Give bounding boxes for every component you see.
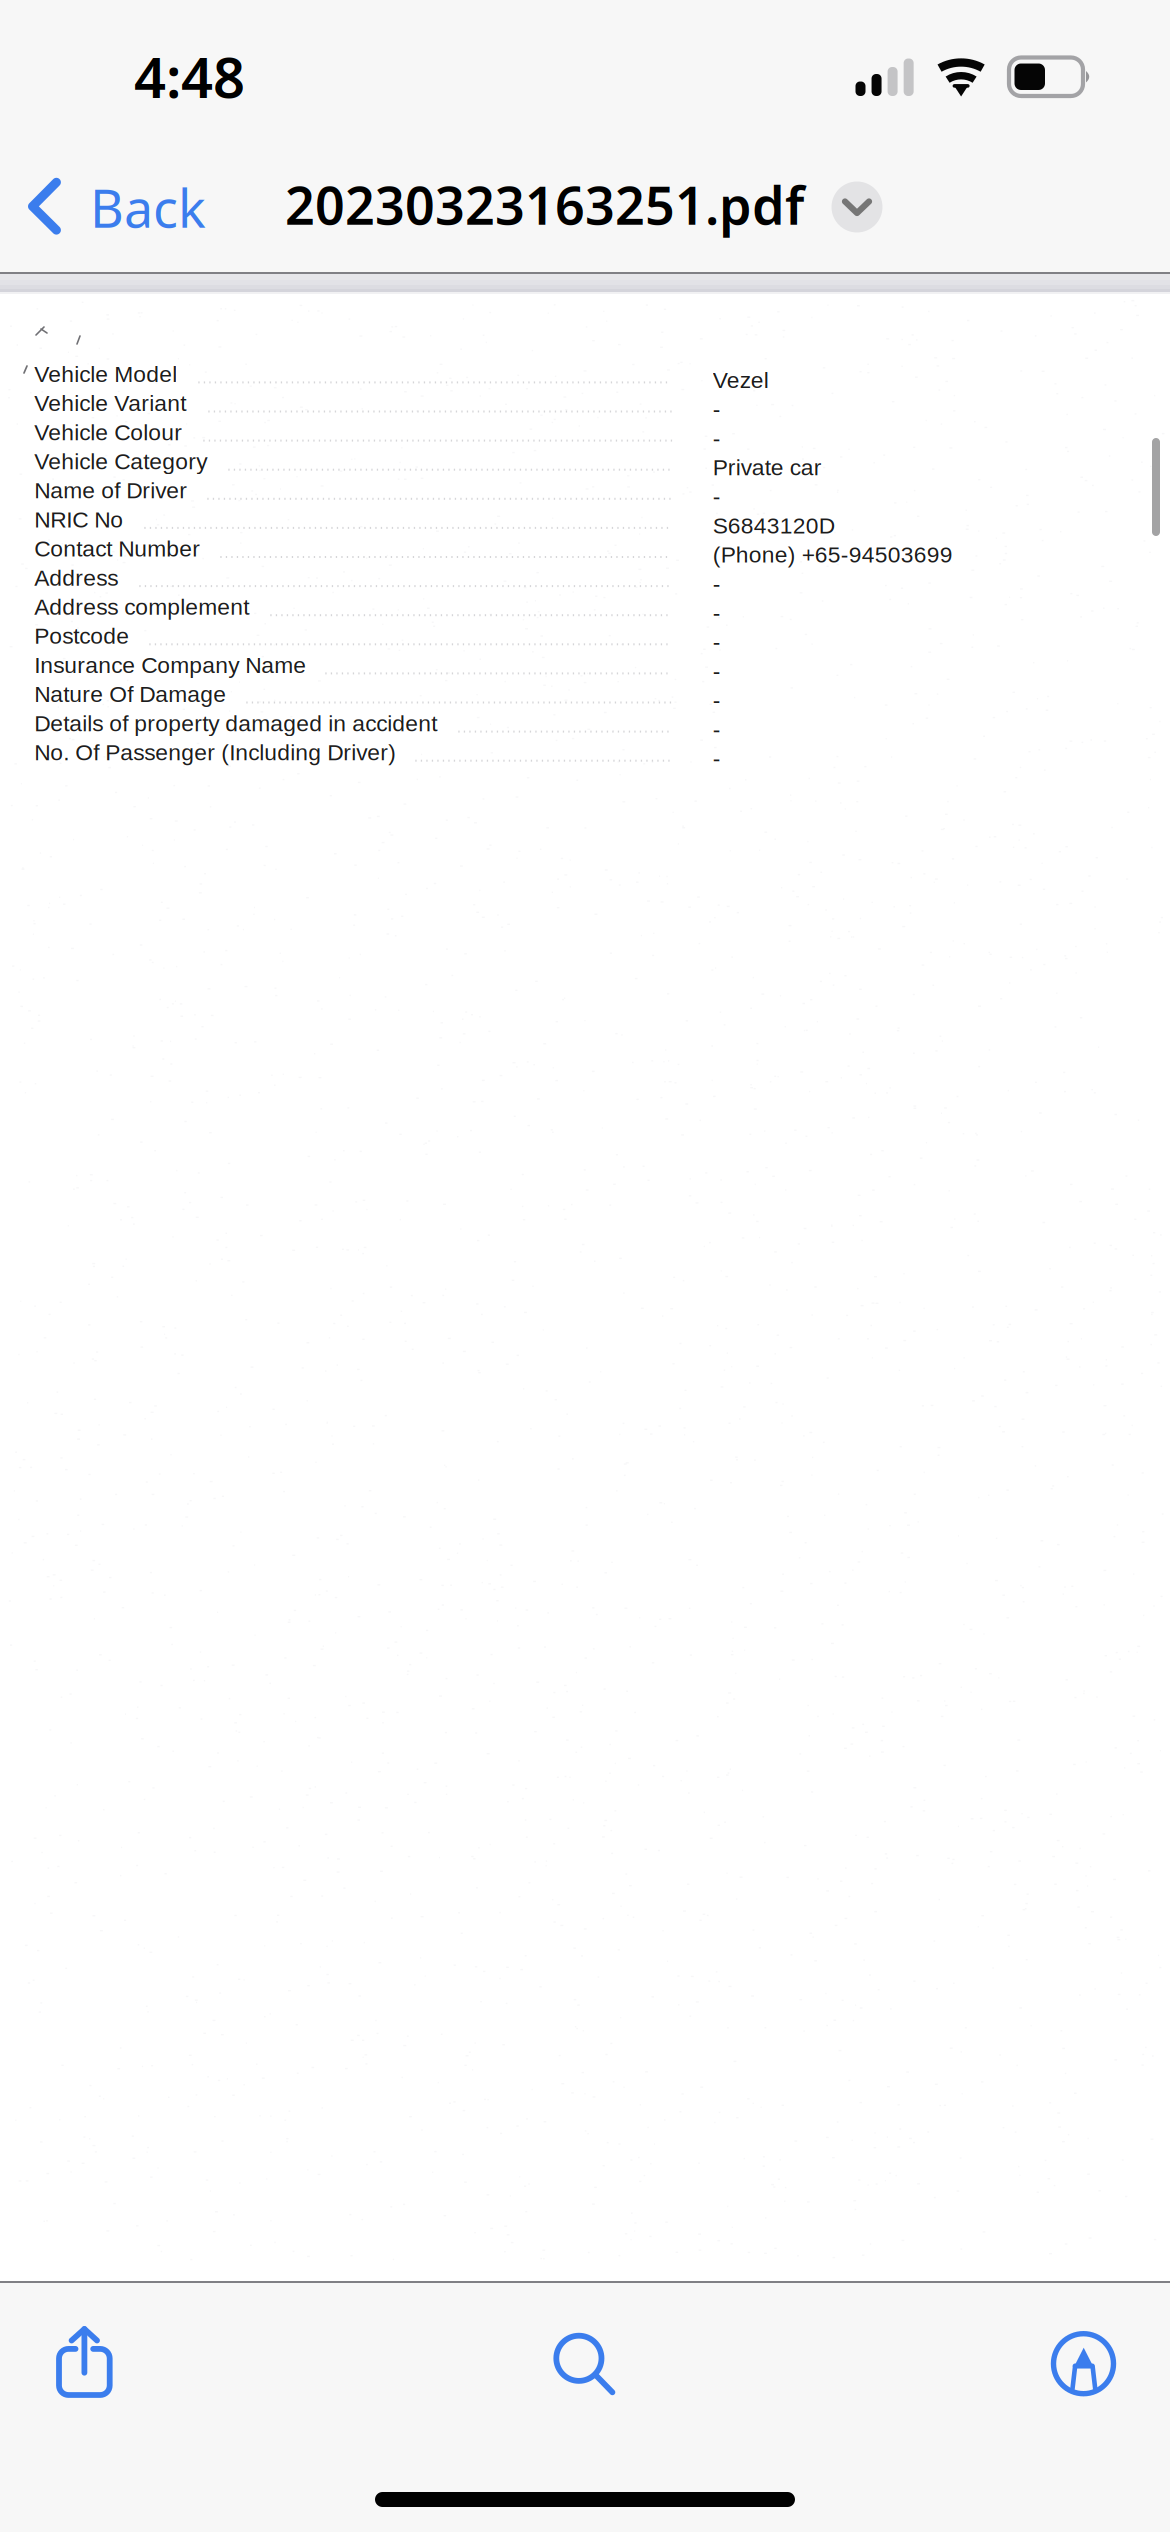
staticText: -: [713, 687, 721, 713]
staticText: Vehicle Variant: [34, 390, 186, 416]
staticText: Back: [90, 173, 206, 242]
staticText: (Phone) +65-94503699: [713, 542, 953, 567]
staticText: Postcode: [34, 623, 129, 649]
staticText: S6843120D: [713, 513, 835, 538]
button[interactable]: Back: [20, 152, 240, 256]
staticText: -: [713, 571, 721, 596]
staticText: Contact Number: [34, 536, 200, 561]
staticText: -: [713, 658, 721, 684]
staticText: Address complement: [34, 594, 249, 620]
staticText: Nature Of Damage: [34, 681, 226, 707]
staticText: Private car: [713, 455, 822, 480]
staticText: Vezel: [713, 367, 769, 393]
button[interactable]: Markup: [1024, 2305, 1142, 2423]
staticText: -: [713, 600, 721, 626]
button[interactable]: Search: [527, 2307, 644, 2424]
staticText: -: [713, 629, 721, 655]
staticText: -: [713, 425, 721, 451]
staticText: Name of Driver: [34, 478, 187, 503]
staticText: 20230323163251.pdf: [285, 170, 804, 239]
staticText: -: [713, 396, 721, 422]
staticText: NRIC No: [34, 507, 123, 532]
button[interactable]: Share: [29, 2300, 141, 2424]
staticText: Details of property damaged in accident: [34, 710, 437, 736]
staticText: -: [713, 746, 721, 771]
staticText: -: [713, 484, 721, 509]
staticText: 4:48: [134, 39, 245, 113]
staticText: Address: [34, 565, 118, 590]
staticText: Insurance Company Name: [34, 652, 306, 678]
staticText: -: [713, 716, 721, 742]
staticText: Vehicle Colour: [34, 419, 182, 445]
button[interactable]: Document options: [817, 167, 897, 247]
staticText: Vehicle Category: [34, 449, 207, 474]
staticText: Vehicle Model: [34, 361, 177, 387]
staticText: No. Of Passenger (Including Driver): [34, 740, 396, 765]
